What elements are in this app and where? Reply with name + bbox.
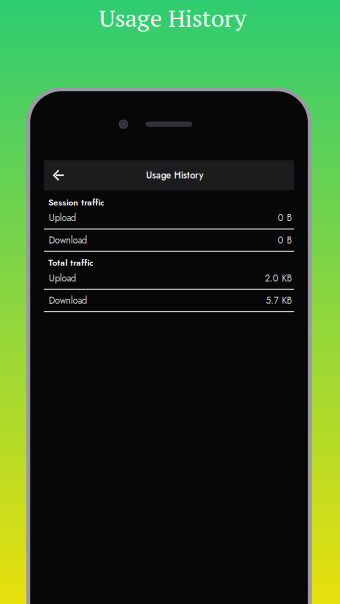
button[interactable]: Back xyxy=(46,160,71,190)
button[interactable]: Upload xyxy=(44,267,294,290)
button[interactable]: Download xyxy=(44,290,294,312)
button[interactable]: Upload xyxy=(44,207,294,229)
staticText: 0 B xyxy=(278,233,292,247)
staticText: Usage History xyxy=(146,168,203,182)
staticText: 0 B xyxy=(278,211,292,225)
staticText: Total traffic xyxy=(48,256,93,269)
staticText: Upload xyxy=(49,271,76,285)
staticText: Usage History xyxy=(99,2,246,34)
staticText: Download xyxy=(49,294,87,307)
staticText: 5.7 KB xyxy=(266,294,292,307)
staticText: 2.0 KB xyxy=(265,271,292,285)
button[interactable]: Download xyxy=(44,229,294,252)
staticText: Upload xyxy=(49,211,76,225)
staticText: Session traffic xyxy=(48,196,104,209)
staticText: Download xyxy=(49,233,87,247)
